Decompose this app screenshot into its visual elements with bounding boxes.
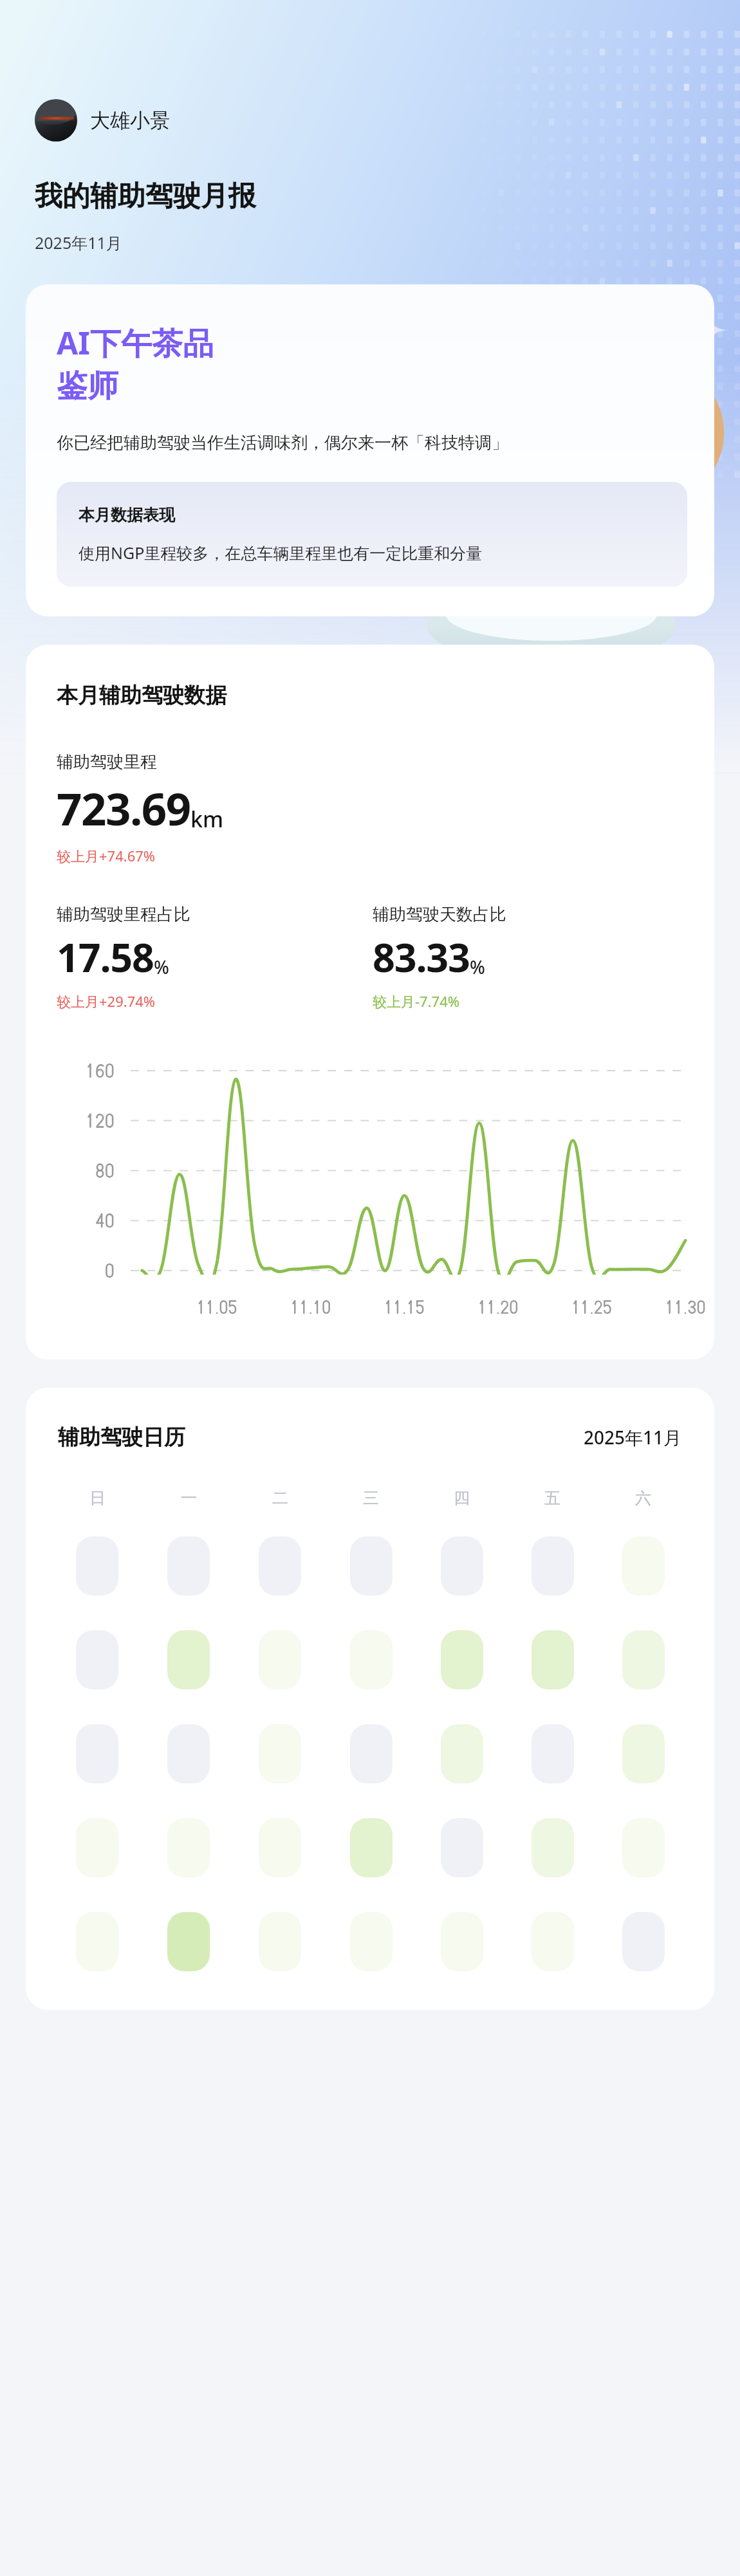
staticText: 五 <box>544 1488 560 1508</box>
staticText: km <box>190 804 224 834</box>
button[interactable] <box>441 1912 483 1971</box>
button[interactable] <box>622 1912 665 1971</box>
button[interactable] <box>350 1724 393 1783</box>
staticText: % <box>154 955 169 979</box>
button[interactable] <box>441 1818 483 1877</box>
staticText: 辅助驾驶里程 <box>57 751 157 773</box>
button[interactable] <box>259 1818 301 1877</box>
button[interactable] <box>622 1630 665 1689</box>
staticText: 17.58 <box>57 930 154 984</box>
button[interactable] <box>259 1724 301 1783</box>
button[interactable] <box>622 1724 665 1783</box>
button[interactable] <box>76 1818 118 1877</box>
staticText: 辅助驾驶里程占比 <box>57 904 190 925</box>
button[interactable]: 本月辅助驾驶数据 <box>26 645 714 1359</box>
button[interactable] <box>532 1724 574 1783</box>
staticText: 六 <box>635 1488 651 1508</box>
button[interactable] <box>622 1818 665 1877</box>
staticText: 一 <box>181 1488 197 1508</box>
staticText: 二 <box>272 1488 288 1508</box>
staticText: 辅助驾驶日历 <box>58 1424 185 1451</box>
button[interactable] <box>622 1536 665 1596</box>
staticText: 723.69 <box>57 778 190 838</box>
staticText: 你已经把辅助驾驶当作生活调味剂，偶尔来一杯「科技特调」 <box>57 432 508 454</box>
button[interactable] <box>76 1630 118 1689</box>
staticText: 辅助驾驶天数占比 <box>373 904 506 925</box>
button[interactable] <box>441 1536 483 1596</box>
button[interactable] <box>76 1536 118 1596</box>
button[interactable] <box>259 1536 301 1596</box>
button[interactable]: User avatar <box>32 97 180 144</box>
staticText: 四 <box>454 1488 470 1508</box>
button[interactable] <box>167 1630 210 1689</box>
staticText: 较上月+74.67% <box>57 846 156 865</box>
staticText: 本月辅助驾驶数据 <box>57 682 227 709</box>
button[interactable] <box>167 1818 210 1877</box>
button[interactable] <box>350 1818 393 1877</box>
staticText: 我的辅助驾驶月报 <box>35 179 256 214</box>
staticText: 本月数据表现 <box>79 505 175 525</box>
button[interactable] <box>350 1536 393 1596</box>
button[interactable] <box>167 1724 210 1783</box>
button[interactable] <box>259 1630 301 1689</box>
button[interactable] <box>167 1912 210 1971</box>
button[interactable] <box>76 1724 118 1783</box>
button[interactable] <box>167 1536 210 1596</box>
staticText: 大雄小景 <box>90 108 170 133</box>
button[interactable] <box>350 1630 393 1689</box>
button[interactable] <box>532 1912 574 1971</box>
staticText: AI下午茶品 鉴师 <box>57 322 214 405</box>
staticText: % <box>470 955 485 979</box>
button[interactable] <box>441 1630 483 1689</box>
staticText: 2025年11月 <box>584 1425 682 1449</box>
button[interactable] <box>76 1912 118 1971</box>
button[interactable]: 辅助驾驶日历 <box>26 1388 714 2010</box>
staticText: 较上月-7.74% <box>373 991 460 1011</box>
button[interactable]: AI下午茶品 鉴师 <box>26 284 714 616</box>
button[interactable] <box>532 1630 574 1689</box>
staticText: 三 <box>363 1488 379 1508</box>
button[interactable] <box>259 1912 301 1971</box>
button[interactable] <box>532 1818 574 1877</box>
staticText: 83.33 <box>373 930 470 984</box>
staticText: 日 <box>89 1488 106 1508</box>
staticText: 较上月+29.74% <box>57 991 156 1011</box>
staticText: 2025年11月 <box>35 232 122 253</box>
button[interactable] <box>532 1536 574 1596</box>
staticText: 使用NGP里程较多，在总车辆里程里也有一定比重和分量 <box>79 542 483 564</box>
button[interactable] <box>350 1912 393 1971</box>
button[interactable] <box>441 1724 483 1783</box>
other: User avatar <box>35 99 77 142</box>
